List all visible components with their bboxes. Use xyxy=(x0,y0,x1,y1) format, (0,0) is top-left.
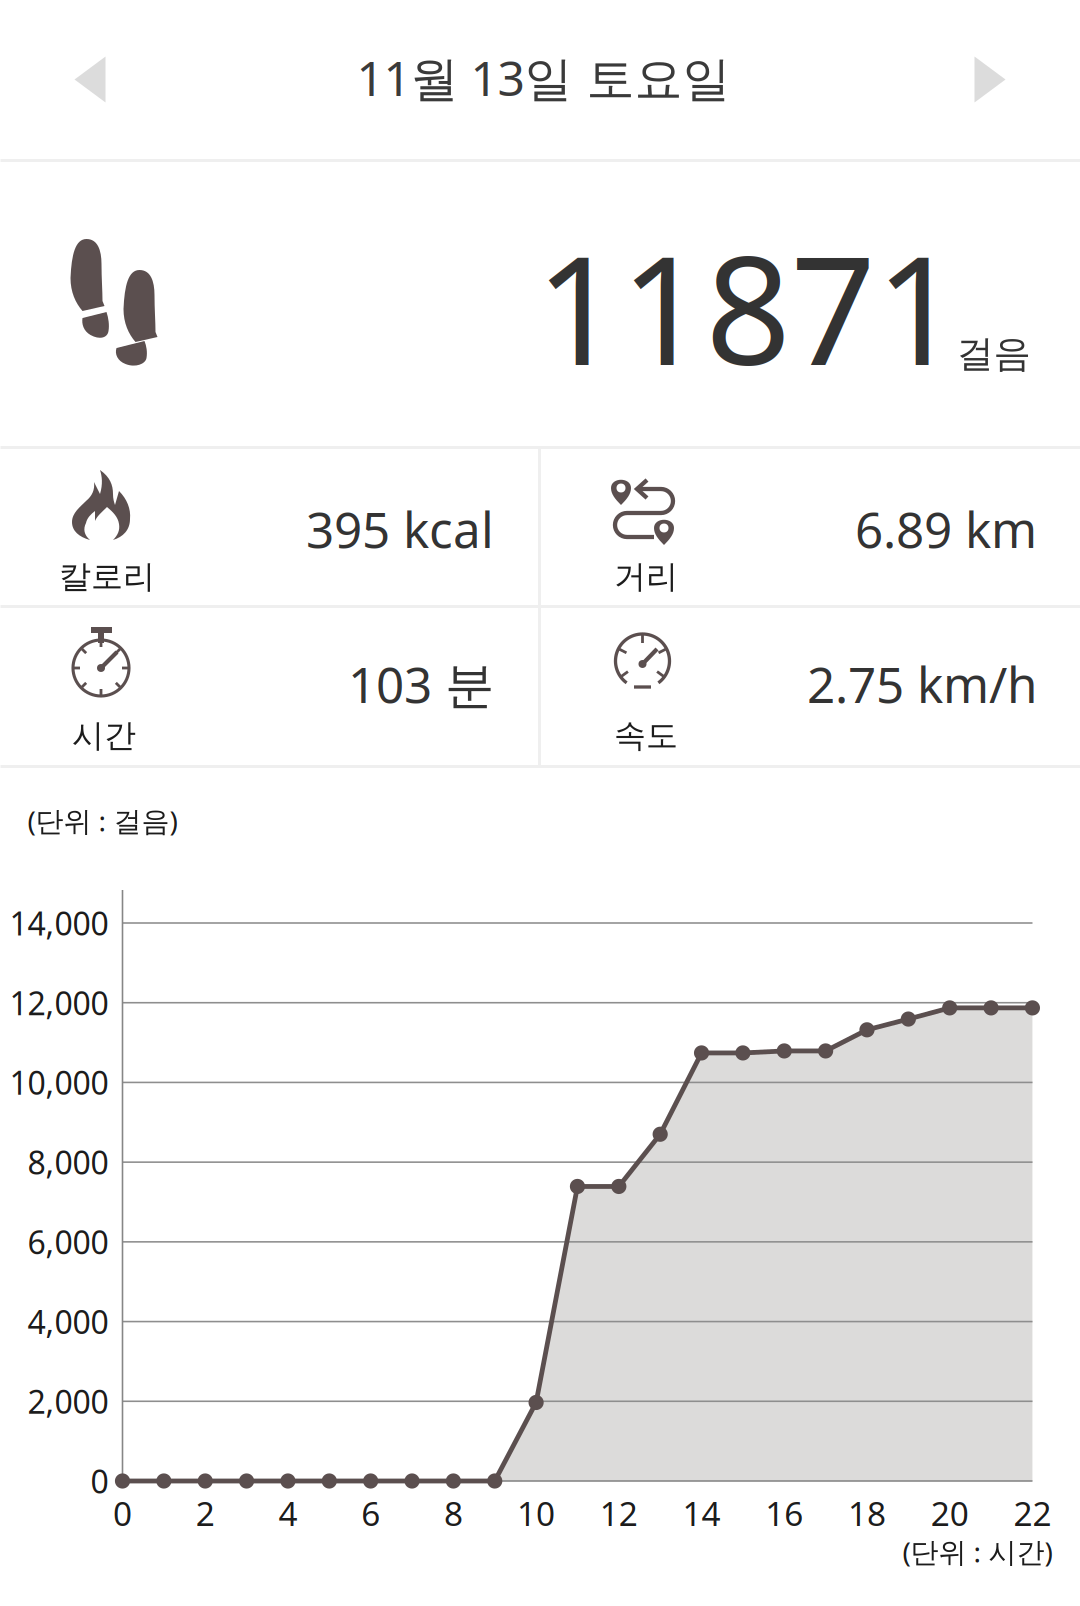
button[interactable]: Previous day xyxy=(0,28,145,130)
staticText: 6.89 km xyxy=(855,496,1037,561)
staticText: 칼로리 xyxy=(59,557,155,596)
staticText: 10,000 xyxy=(9,1061,108,1104)
staticText: 11871 xyxy=(535,208,960,406)
staticText: 14 xyxy=(682,1491,720,1535)
staticText: 12,000 xyxy=(9,981,108,1024)
staticText: 6 xyxy=(361,1491,380,1535)
staticText: 11월 13일 토요일 xyxy=(356,46,730,109)
staticText: 걸음 xyxy=(956,331,1030,377)
staticText: (단위 : 걸음) xyxy=(27,802,177,839)
staticText: (단위 : 시간) xyxy=(902,1533,1052,1570)
staticText: 20 xyxy=(931,1491,969,1535)
staticText: 4 xyxy=(278,1491,297,1535)
staticText: 22 xyxy=(1013,1491,1051,1535)
staticText: 10 xyxy=(517,1491,555,1535)
button[interactable]: 11월 13일 토요일 xyxy=(316,16,770,139)
staticText: 거리 xyxy=(614,557,678,596)
staticText: 4,000 xyxy=(27,1300,108,1343)
button[interactable]: Next day xyxy=(934,28,1080,130)
staticText: 395 kcal xyxy=(306,496,494,561)
staticText: 12 xyxy=(600,1491,638,1535)
button[interactable]: 속도 xyxy=(541,608,1080,765)
staticText: 14,000 xyxy=(9,902,108,944)
staticText: 2,000 xyxy=(27,1380,108,1422)
staticText: 18 xyxy=(848,1491,886,1535)
staticText: 0 xyxy=(90,1460,108,1502)
staticText: 8,000 xyxy=(27,1141,108,1183)
staticText: 시간 xyxy=(72,716,136,755)
staticText: 16 xyxy=(765,1491,803,1535)
button[interactable]: 시간 xyxy=(0,608,538,765)
button[interactable]: 칼로리 xyxy=(0,449,538,605)
staticText: 2 xyxy=(196,1491,215,1535)
button[interactable]: 거리 xyxy=(541,449,1080,605)
staticText: 8 xyxy=(444,1491,463,1535)
staticText: 2.75 km/h xyxy=(807,651,1037,716)
staticText: 6,000 xyxy=(27,1221,108,1263)
staticText: 103 분 xyxy=(348,651,494,716)
staticText: 0 xyxy=(113,1491,132,1535)
staticText: 속도 xyxy=(614,716,678,755)
